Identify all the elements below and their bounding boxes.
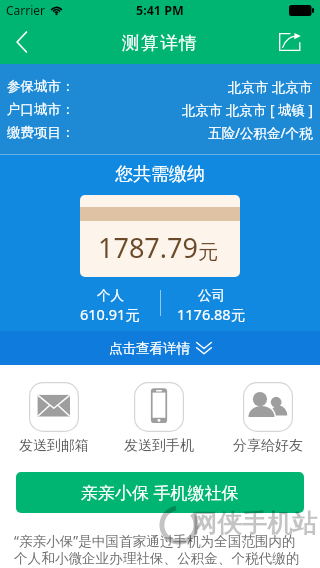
- staticText: 北京市 北京市: [228, 78, 313, 96]
- staticText: 五险/公积金/个税: [208, 124, 313, 142]
- staticText: 个人: [97, 287, 124, 304]
- button[interactable]: 点击查看详情: [0, 331, 320, 365]
- staticText: “亲亲小保”是中国首家通过手机为全国范围内的个人和小微企业办理社保、公积金、个税…: [14, 531, 302, 567]
- staticText: 亲亲小保 手机缴社保: [81, 481, 239, 504]
- staticText: 北京市 北京市 [ 城镇 ]: [182, 101, 313, 119]
- staticText: 您共需缴纳: [115, 163, 205, 186]
- staticText: 发送到邮箱: [19, 437, 89, 452]
- button[interactable]: Share: [268, 20, 312, 64]
- staticText: 缴费项目：: [7, 124, 75, 141]
- button[interactable]: 发送到手机: [113, 372, 205, 452]
- staticText: 发送到手机: [124, 437, 194, 452]
- staticText: 户口城市：: [7, 101, 75, 118]
- staticText: 参保城市：: [7, 78, 75, 95]
- button[interactable]: Back: [0, 20, 44, 64]
- staticText: 公司: [198, 287, 225, 304]
- staticText: Carrier: [6, 2, 46, 18]
- staticText: 5:41 PM: [136, 2, 184, 19]
- button[interactable]: 发送到邮箱: [8, 372, 100, 452]
- staticText: 测算详情: [122, 32, 199, 54]
- button[interactable]: 亲亲小保 手机缴社保: [16, 472, 304, 513]
- staticText: 网侠手机站: [192, 508, 317, 539]
- staticText: 点击查看详情: [109, 340, 190, 357]
- staticText: 1176.88元: [177, 304, 246, 324]
- staticText: 元: [198, 240, 218, 265]
- staticText: 分享给好友: [233, 437, 303, 452]
- staticText: 1787.79: [98, 229, 198, 266]
- staticText: 610.91元: [80, 304, 140, 324]
- button[interactable]: 分享给好友: [222, 372, 314, 452]
